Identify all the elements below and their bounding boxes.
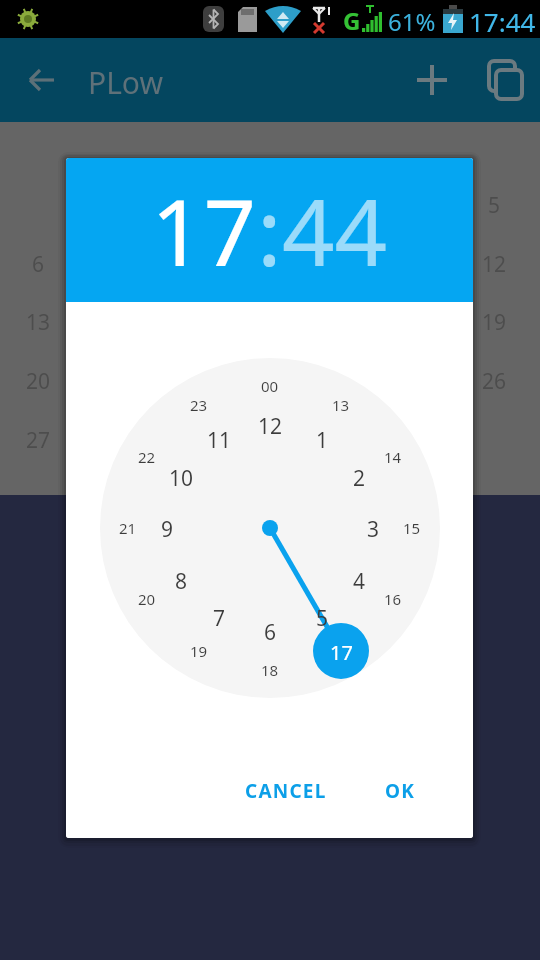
staticText: : <box>257 168 282 293</box>
button[interactable] <box>410 58 454 102</box>
button[interactable]: 17 <box>321 639 361 663</box>
staticText: 20 <box>26 367 51 396</box>
staticText: PLow <box>88 62 163 103</box>
staticText: 14 <box>384 447 402 467</box>
staticText: 2 <box>353 464 366 490</box>
staticText: 26 <box>482 367 507 396</box>
button[interactable]: 1 <box>302 426 342 452</box>
button[interactable] <box>20 58 64 102</box>
staticText: 18 <box>261 660 279 680</box>
button[interactable]: 15 <box>392 516 432 540</box>
button[interactable]: 7 <box>199 604 239 630</box>
button[interactable]: 20 <box>127 587 167 611</box>
button[interactable]: 44 <box>282 168 388 293</box>
staticText: 15 <box>403 518 421 538</box>
staticText: 13 <box>332 395 350 415</box>
staticText: 00 <box>261 376 279 396</box>
button[interactable]: 16 <box>373 587 413 611</box>
button[interactable]: 00 <box>250 374 290 398</box>
button[interactable]: 11 <box>199 426 239 452</box>
button[interactable]: 19 <box>179 639 219 663</box>
staticText: 20 <box>138 589 156 609</box>
staticText: 44 <box>282 168 388 293</box>
staticText: 13 <box>26 308 51 337</box>
button[interactable]: 6 <box>250 618 290 644</box>
staticText: 10 <box>169 464 194 490</box>
staticText: 3 <box>367 515 380 541</box>
button[interactable]: 9 <box>147 515 187 541</box>
staticText: 21 <box>119 518 137 538</box>
button[interactable]: 23 <box>179 393 219 417</box>
staticText: 17 <box>330 639 353 663</box>
button[interactable]: 21 <box>108 516 148 540</box>
button[interactable]: 10 <box>161 464 201 490</box>
button[interactable]: 3 <box>353 515 393 541</box>
staticText: 6 <box>264 618 277 644</box>
staticText: OK <box>385 778 416 804</box>
button[interactable]: 22 <box>127 445 167 469</box>
button[interactable]: 14 <box>373 445 413 469</box>
staticText: CANCEL <box>245 778 327 804</box>
button[interactable]: 4 <box>339 567 379 593</box>
button[interactable]: 18 <box>250 658 290 682</box>
staticText: 4 <box>353 567 366 593</box>
staticText: 27 <box>26 426 51 455</box>
button[interactable]: 12 <box>250 412 290 438</box>
staticText: 12 <box>258 412 283 438</box>
staticText: G <box>343 4 361 37</box>
staticText: 19 <box>482 308 507 337</box>
staticText: 9 <box>161 515 174 541</box>
button[interactable]: 2 <box>339 464 379 490</box>
staticText: 1 <box>316 426 329 452</box>
staticText: 6 <box>32 250 45 279</box>
staticText: 5 <box>316 604 329 630</box>
button[interactable] <box>480 56 528 104</box>
button[interactable]: 8 <box>161 567 201 593</box>
staticText: 17 <box>151 168 257 293</box>
staticText: 22 <box>138 447 156 467</box>
staticText: 8 <box>175 567 188 593</box>
staticText: 11 <box>207 426 232 452</box>
staticText: 61% <box>388 5 436 38</box>
staticText: 17:44 <box>469 4 536 39</box>
button[interactable]: CANCEL <box>231 771 341 811</box>
button[interactable]: 13 <box>321 393 361 417</box>
button[interactable]: 5 <box>302 604 342 630</box>
staticText: 23 <box>190 395 208 415</box>
staticText: 19 <box>190 641 208 661</box>
button[interactable]: OK <box>365 771 435 811</box>
staticText: 16 <box>384 589 402 609</box>
staticText: 12 <box>482 250 507 279</box>
button[interactable]: 17 <box>151 168 257 293</box>
staticText: 5 <box>488 191 501 220</box>
staticText: 7 <box>213 604 226 630</box>
